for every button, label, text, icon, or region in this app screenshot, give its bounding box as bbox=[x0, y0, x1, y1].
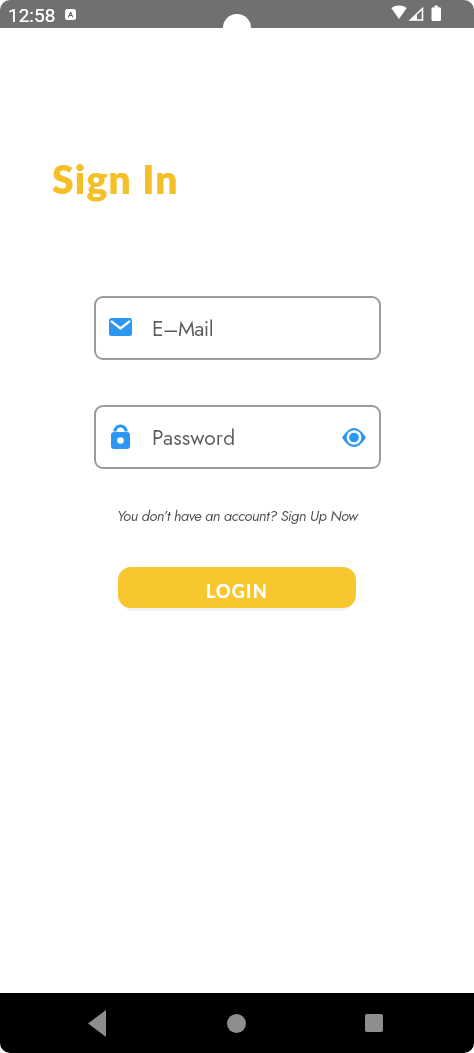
button[interactable]: You don’t have an account? Sign Up Now bbox=[117, 505, 358, 527]
button[interactable] bbox=[334, 420, 374, 454]
button[interactable]: E–Mail bbox=[94, 296, 381, 360]
button[interactable] bbox=[212, 999, 260, 1047]
button[interactable]: Password bbox=[94, 405, 381, 469]
staticText: Password bbox=[152, 423, 236, 453]
staticText: 12:58 bbox=[8, 4, 56, 26]
button[interactable]: LOGIN bbox=[118, 567, 356, 608]
staticText: A bbox=[68, 10, 74, 19]
staticText: Sign In bbox=[52, 156, 179, 203]
button[interactable] bbox=[350, 999, 398, 1047]
button[interactable] bbox=[73, 999, 121, 1047]
staticText: E–Mail bbox=[152, 314, 213, 344]
staticText: LOGIN bbox=[206, 580, 268, 602]
